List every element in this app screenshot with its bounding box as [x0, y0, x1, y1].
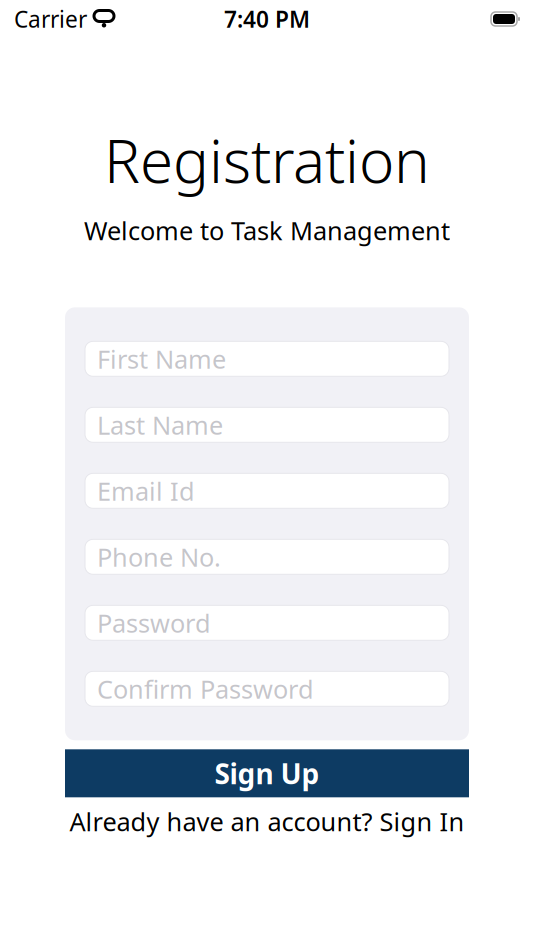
staticText: Phone No.: [97, 540, 221, 574]
staticText: Confirm Password: [97, 672, 314, 706]
button[interactable]: Phone No.: [85, 539, 449, 574]
staticText: Sign Up: [214, 755, 319, 792]
button[interactable]: Already have an account? Sign In: [65, 805, 469, 837]
staticText: Password: [97, 606, 211, 640]
staticText: Welcome to Task Management: [84, 214, 450, 247]
staticText: 7:40 PM: [224, 4, 310, 34]
button[interactable]: Sign Up: [65, 749, 469, 797]
staticText: Registration: [104, 120, 430, 200]
staticText: First Name: [97, 342, 226, 376]
button[interactable]: Password: [85, 605, 449, 640]
button[interactable]: Confirm Password: [85, 671, 449, 706]
button[interactable]: First Name: [85, 341, 449, 376]
staticText: Carrier: [14, 4, 87, 34]
staticText: Email Id: [97, 474, 195, 508]
staticText: Last Name: [97, 408, 223, 442]
staticText: Already have an account? Sign In: [69, 804, 464, 838]
button[interactable]: Email Id: [85, 473, 449, 508]
button[interactable]: Last Name: [85, 407, 449, 442]
